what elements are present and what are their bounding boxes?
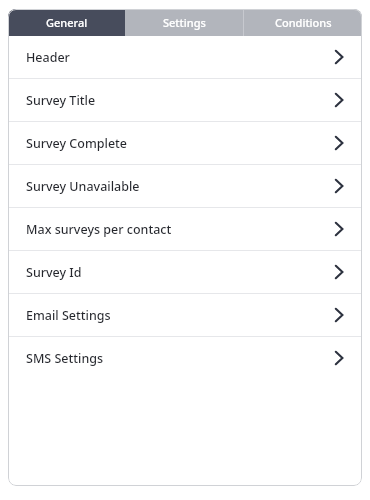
- staticText: Survey Complete: [26, 135, 128, 152]
- button[interactable]: Email Settings: [8, 294, 362, 336]
- other: Open Max surveys per contact: [329, 219, 349, 239]
- other: Open Email Settings: [329, 305, 349, 325]
- other: Open Survey Unavailable: [329, 176, 349, 196]
- button[interactable]: Max surveys per contact: [8, 208, 362, 250]
- other: Open SMS Settings: [329, 348, 349, 368]
- button[interactable]: Survey Id: [8, 251, 362, 293]
- staticText: Survey Id: [26, 264, 82, 281]
- staticText: Settings: [163, 15, 206, 30]
- button[interactable]: Survey Title: [8, 79, 362, 121]
- staticText: Survey Unavailable: [26, 178, 140, 195]
- button[interactable]: General: [8, 9, 125, 36]
- staticText: SMS Settings: [26, 350, 104, 367]
- staticText: Survey Title: [26, 92, 96, 109]
- staticText: Max surveys per contact: [26, 221, 172, 238]
- staticText: Email Settings: [26, 307, 111, 324]
- other: Open Survey Id: [329, 262, 349, 282]
- staticText: General: [46, 15, 88, 30]
- button[interactable]: Survey Complete: [8, 122, 362, 164]
- staticText: Conditions: [275, 15, 332, 30]
- button[interactable]: SMS Settings: [8, 337, 362, 379]
- other: Open Survey Complete: [329, 133, 349, 153]
- other: Open Header: [329, 47, 349, 67]
- button[interactable]: Conditions: [244, 9, 362, 36]
- button[interactable]: Survey Unavailable: [8, 165, 362, 207]
- other: Open Survey Title: [329, 90, 349, 110]
- button[interactable]: Settings: [125, 9, 243, 36]
- staticText: Header: [26, 49, 70, 66]
- button[interactable]: Header: [8, 36, 362, 78]
